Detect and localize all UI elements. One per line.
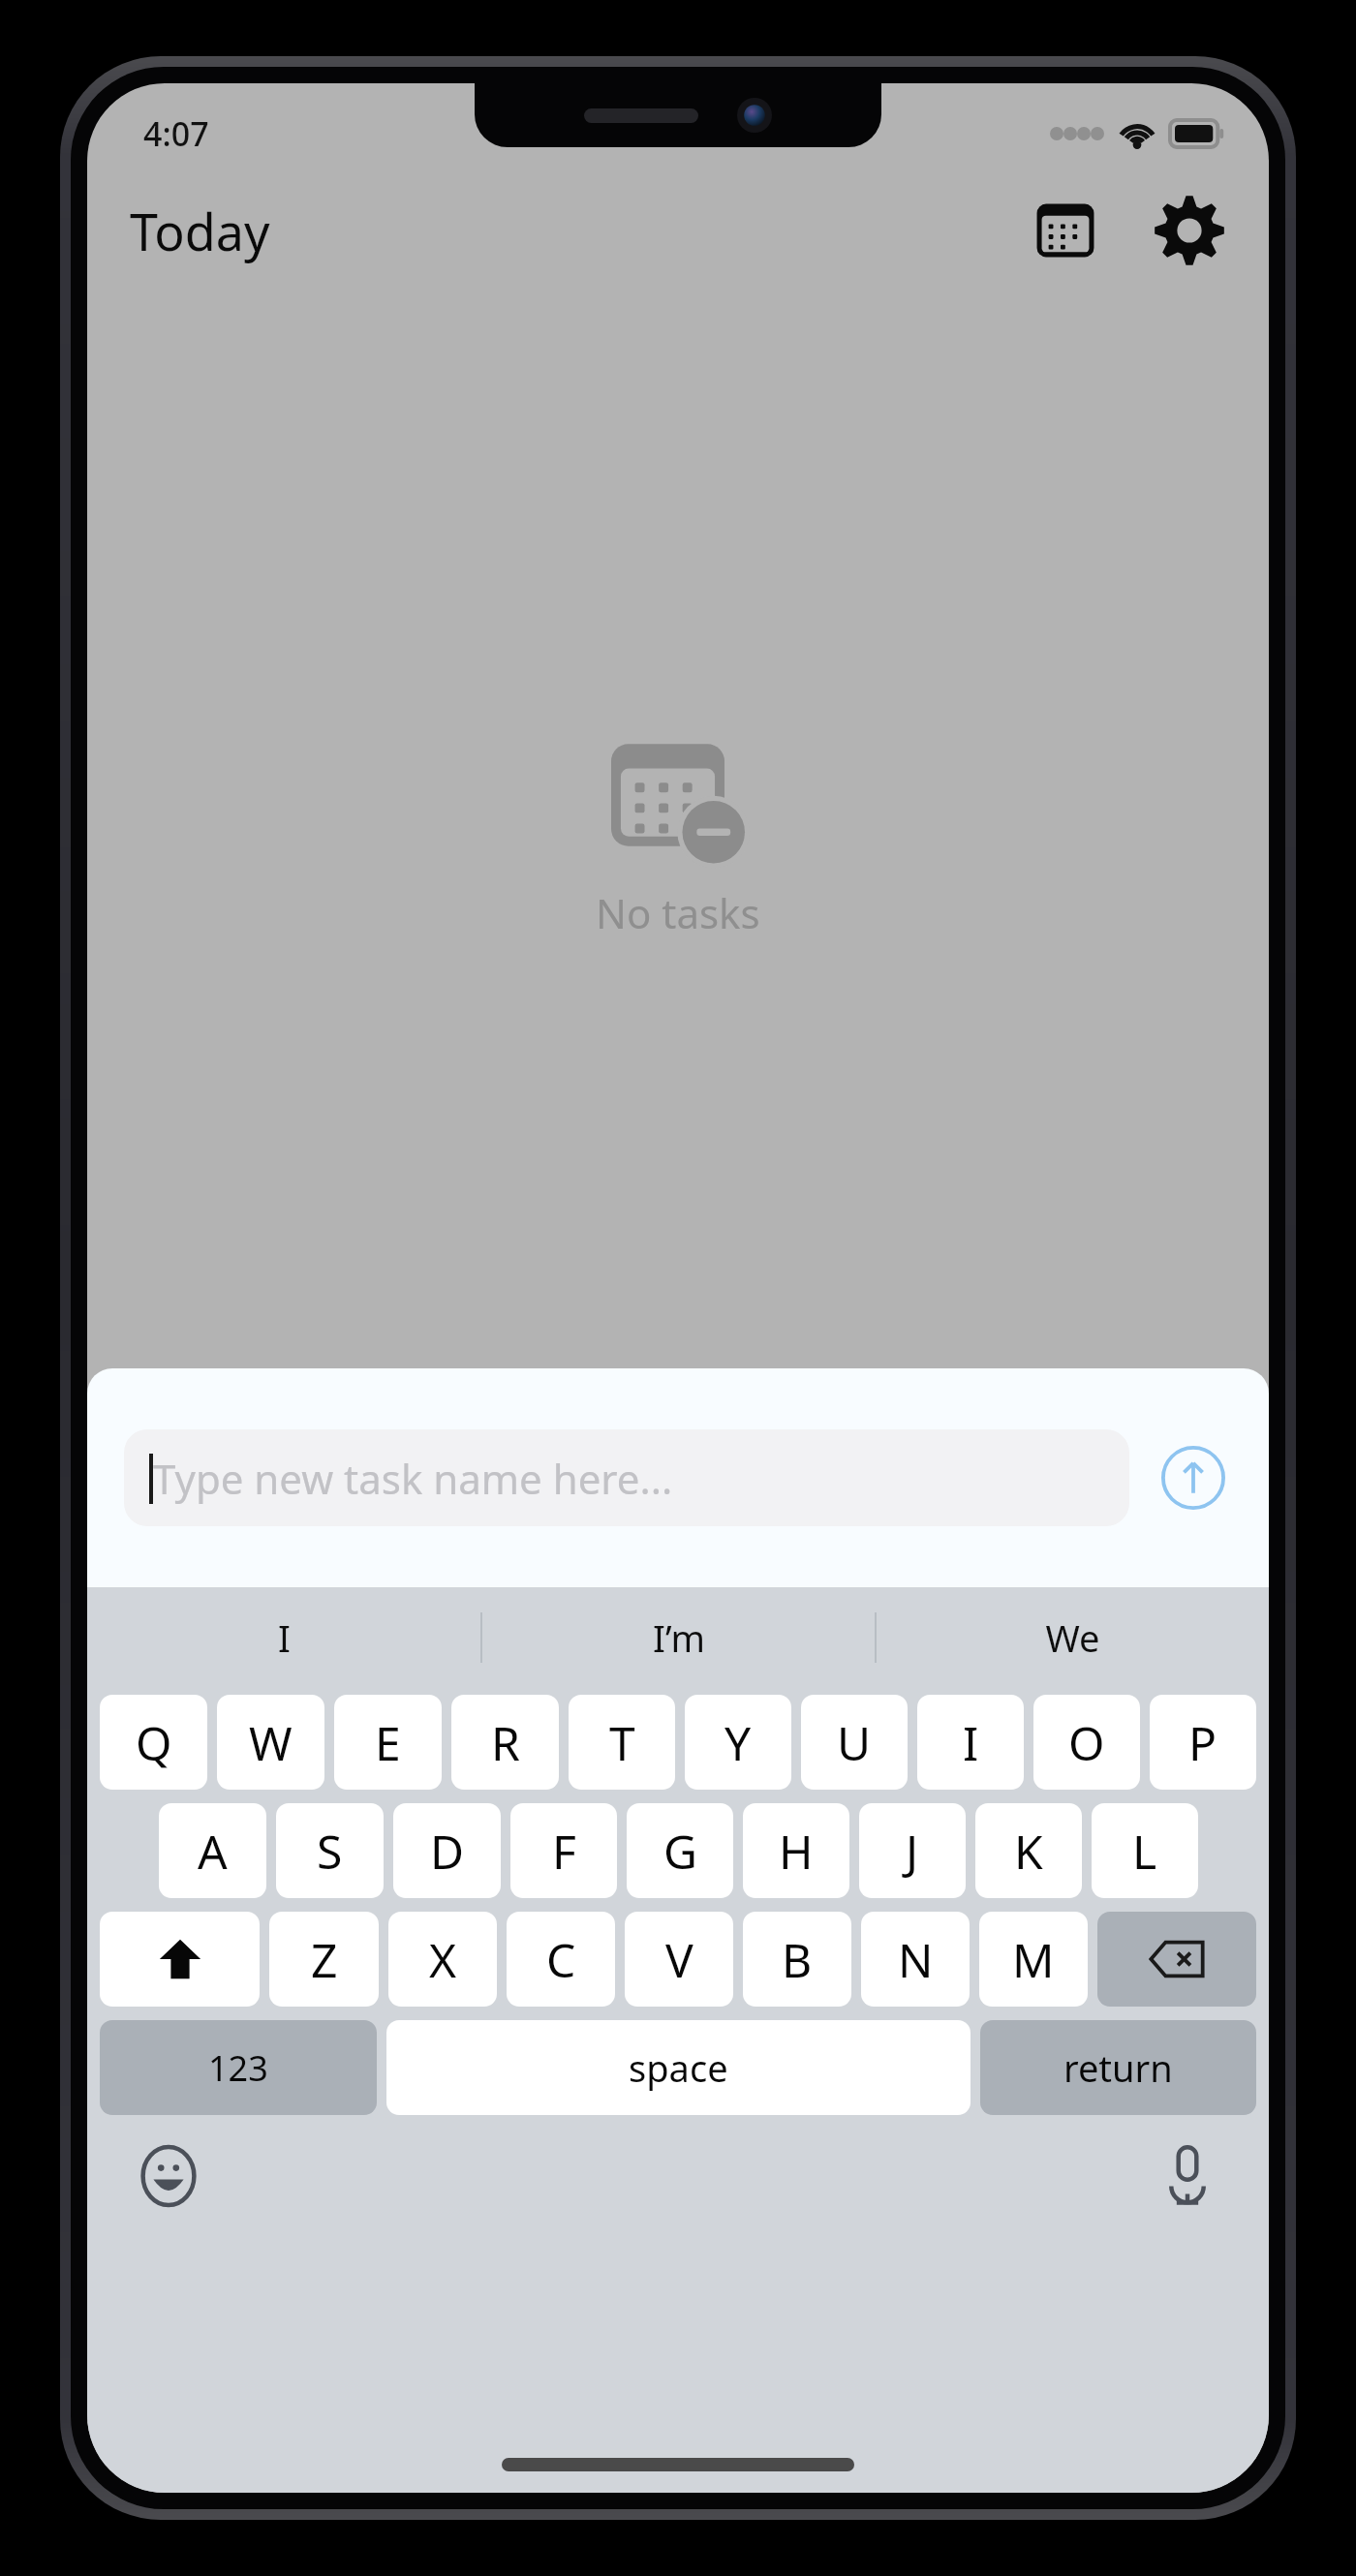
button[interactable]: Z	[269, 1912, 379, 2007]
button[interactable]: E	[334, 1695, 442, 1790]
staticText: space	[629, 2042, 728, 2093]
button[interactable]: D	[393, 1803, 501, 1898]
staticText: X	[429, 1928, 457, 1991]
staticText: J	[906, 1820, 919, 1883]
button[interactable]: H	[743, 1803, 849, 1898]
button[interactable]: X	[388, 1912, 497, 2007]
button[interactable]: I	[87, 1587, 480, 1688]
staticText: return	[1063, 2042, 1173, 2093]
staticText: H	[779, 1820, 814, 1883]
button[interactable]: S	[276, 1803, 384, 1898]
staticText: E	[375, 1711, 401, 1774]
button[interactable]: G	[627, 1803, 733, 1898]
button[interactable]: Q	[100, 1695, 207, 1790]
button[interactable]: R	[451, 1695, 559, 1790]
button[interactable]: Y	[685, 1695, 791, 1790]
button[interactable]: U	[801, 1695, 908, 1790]
staticText: W	[249, 1711, 293, 1774]
button[interactable]: Settings	[1149, 190, 1230, 271]
button[interactable]: F	[510, 1803, 617, 1898]
button[interactable]: V	[625, 1912, 733, 2007]
button[interactable]: I	[917, 1695, 1024, 1790]
button[interactable]: N	[861, 1912, 970, 2007]
staticText: V	[665, 1928, 693, 1991]
staticText: I	[963, 1711, 979, 1774]
staticText: No tasks	[596, 885, 760, 940]
button[interactable]: Emoji	[132, 2139, 205, 2213]
button[interactable]: We	[877, 1587, 1269, 1688]
staticText: Y	[724, 1711, 752, 1774]
staticText: 4:07	[143, 111, 209, 156]
button[interactable]: Add task	[1155, 1439, 1232, 1517]
button[interactable]: return	[980, 2020, 1256, 2115]
staticText: U	[837, 1711, 872, 1774]
staticText: N	[898, 1928, 934, 1991]
button[interactable]: O	[1033, 1695, 1140, 1790]
staticText: O	[1068, 1711, 1105, 1774]
button[interactable]: Calendar	[1025, 190, 1106, 271]
staticText: B	[782, 1928, 813, 1991]
button[interactable]: Shift	[100, 1912, 260, 2007]
button[interactable]: C	[507, 1912, 615, 2007]
staticText: Today	[130, 197, 270, 265]
staticText: I	[278, 1612, 291, 1663]
staticText: F	[552, 1820, 576, 1883]
button[interactable]: Dictate	[1151, 2139, 1224, 2213]
staticText: S	[317, 1820, 343, 1883]
staticText: I’m	[653, 1612, 705, 1663]
button[interactable]: P	[1150, 1695, 1256, 1790]
staticText: Z	[311, 1928, 338, 1991]
staticText: M	[1012, 1928, 1055, 1991]
button[interactable]: M	[979, 1912, 1088, 2007]
button[interactable]: L	[1092, 1803, 1198, 1898]
button[interactable]: W	[217, 1695, 324, 1790]
button[interactable]: T	[569, 1695, 675, 1790]
button[interactable]: K	[975, 1803, 1082, 1898]
staticText: We	[1045, 1612, 1100, 1663]
staticText: K	[1014, 1820, 1043, 1883]
button[interactable]: A	[159, 1803, 266, 1898]
staticText: A	[198, 1820, 228, 1883]
staticText: Q	[136, 1711, 172, 1774]
staticText: G	[663, 1820, 697, 1883]
staticText: P	[1188, 1711, 1217, 1774]
button[interactable]: B	[743, 1912, 851, 2007]
button[interactable]: Backspace	[1097, 1912, 1256, 2007]
staticText: 123	[208, 2044, 268, 2092]
staticText: Type new task name here...	[153, 1451, 673, 1506]
button[interactable]: space	[386, 2020, 971, 2115]
staticText: T	[609, 1711, 635, 1774]
staticText: C	[546, 1928, 576, 1991]
staticText: L	[1132, 1820, 1157, 1883]
button[interactable]: I’m	[482, 1587, 875, 1688]
staticText: R	[491, 1711, 520, 1774]
button[interactable]: Type new task name here...	[124, 1429, 1129, 1526]
staticText: D	[430, 1820, 465, 1883]
button[interactable]: J	[859, 1803, 966, 1898]
button[interactable]: 123	[100, 2020, 377, 2115]
